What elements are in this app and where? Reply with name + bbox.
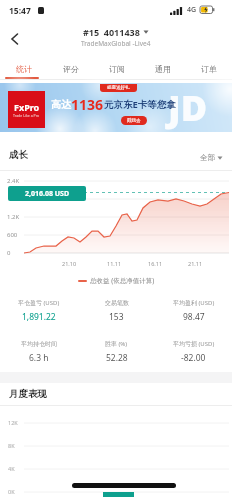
- staticText: #15 4011438: [83, 26, 140, 38]
- staticText: 15:47: [9, 5, 31, 17]
- staticText: 高达: [51, 98, 71, 111]
- staticText: 评分: [63, 64, 79, 74]
- staticText: JD: [168, 83, 208, 132]
- staticText: 4K: [8, 465, 15, 472]
- button[interactable]: 通用: [140, 56, 186, 81]
- button[interactable]: #15 4011438: [83, 26, 149, 38]
- staticText: 21.10: [62, 260, 77, 267]
- staticText: 1136: [71, 95, 104, 114]
- staticText: 元京东E卡等您拿: [104, 98, 176, 111]
- staticText: 0K: [8, 488, 15, 495]
- staticText: 全部: [200, 153, 215, 162]
- staticText: 盛夏送好礼: [107, 85, 130, 91]
- staticText: 月度表现: [9, 388, 47, 400]
- staticText: 4G: [187, 5, 197, 15]
- staticText: 153: [109, 311, 124, 323]
- staticText: 平均持仓时间: [21, 340, 57, 348]
- staticText: 2,016.08 USD: [25, 189, 70, 199]
- staticText: 12K: [8, 419, 18, 426]
- staticText: 订单: [201, 64, 217, 74]
- staticText: TradeMaxGlobal -Live4: [81, 39, 151, 48]
- staticText: 2.4K: [7, 177, 20, 185]
- button[interactable]: 统计: [0, 56, 47, 81]
- staticText: Trade Like a Pro: [13, 113, 40, 118]
- staticText: 平均亏损 (USD): [173, 340, 215, 348]
- button[interactable]: 订单: [186, 56, 232, 81]
- staticText: 16.11: [148, 260, 163, 267]
- staticText: 戳我去: [127, 118, 141, 124]
- staticText: 52.28: [106, 352, 128, 364]
- staticText: FxPro: [14, 101, 40, 113]
- staticText: 通用: [155, 64, 171, 74]
- button[interactable]: 评分: [47, 56, 94, 81]
- button[interactable]: JD: [0, 83, 232, 132]
- staticText: 订阅: [109, 64, 125, 74]
- staticText: 98.47: [183, 311, 205, 323]
- staticText: 平仓盈亏 (USD): [18, 299, 60, 307]
- staticText: 600: [7, 231, 18, 239]
- staticText: 平均盈利 (USD): [173, 299, 215, 307]
- staticText: 统计: [16, 64, 32, 74]
- staticText: 交易笔数: [105, 299, 129, 307]
- staticText: 8K: [8, 442, 15, 449]
- button[interactable]: 全部: [200, 153, 223, 162]
- button[interactable]: 戳我去: [121, 116, 147, 125]
- staticText: 1,891.22: [22, 311, 56, 323]
- staticText: -82.00: [181, 352, 206, 364]
- staticText: 总收益 (依总净值计算): [90, 276, 155, 285]
- staticText: 1.2K: [7, 213, 20, 221]
- staticText: 11.11: [107, 260, 122, 267]
- staticText: 成长: [9, 149, 28, 161]
- staticText: 0: [7, 249, 11, 257]
- button[interactable]: [10, 33, 20, 45]
- staticText: 胜率 (%): [105, 340, 128, 348]
- button[interactable]: 订阅: [94, 56, 140, 81]
- staticText: 6.3 h: [29, 352, 49, 364]
- staticText: 21.11: [188, 260, 203, 267]
